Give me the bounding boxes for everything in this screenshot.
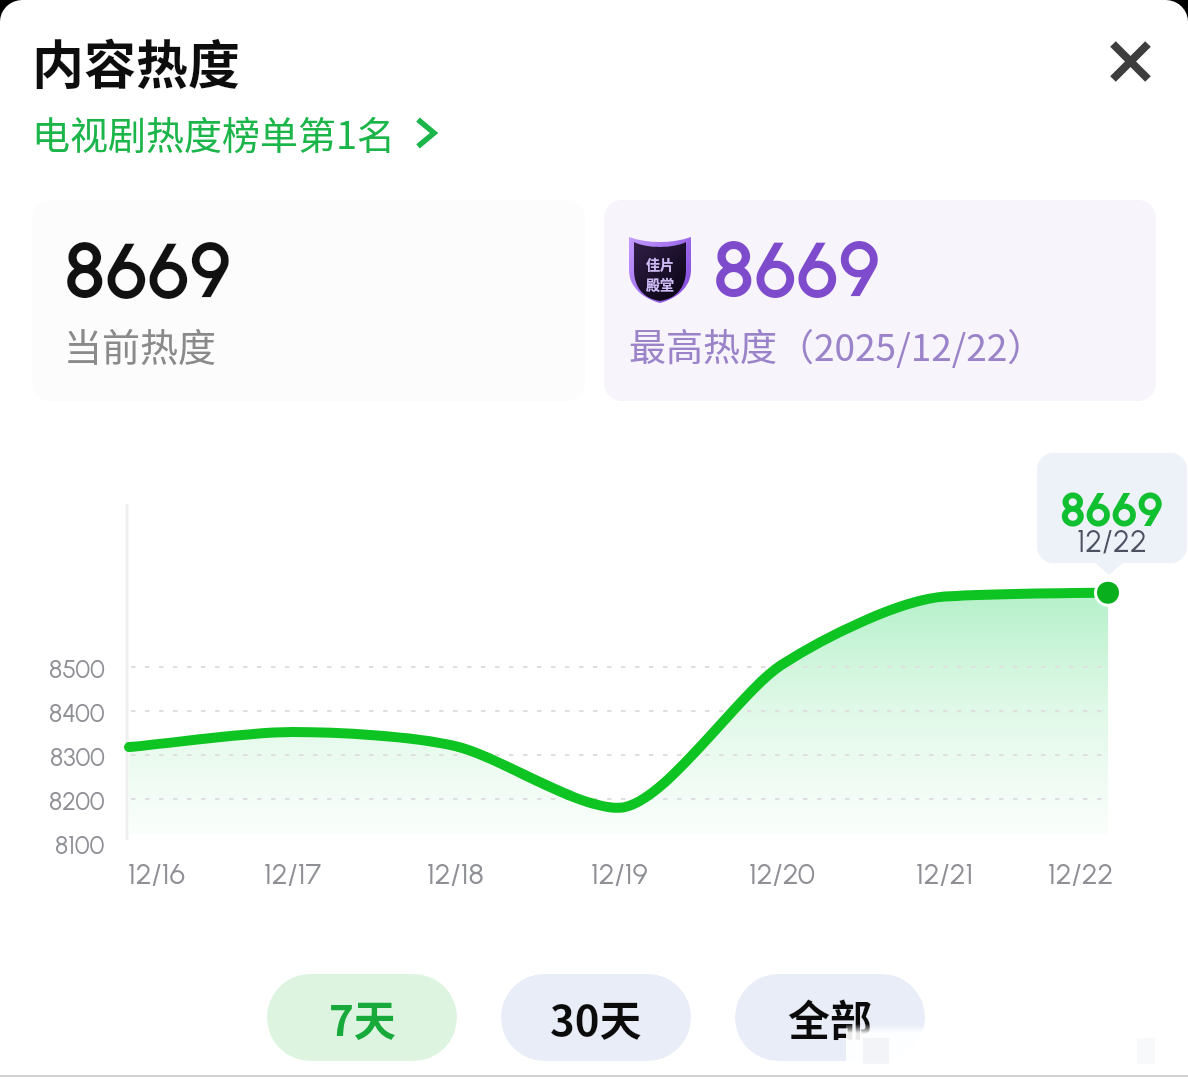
staticText: 12/21 [916, 856, 974, 891]
staticText: 12/22 [1077, 523, 1147, 560]
staticText: 佳片 [646, 254, 674, 274]
staticText: 内容热度 [32, 24, 241, 99]
button[interactable]: 全部 [735, 974, 925, 1061]
button[interactable]: 电视剧热度榜单第1名 [32, 105, 436, 160]
staticText: 殿堂 [646, 274, 674, 294]
staticText: 最高热度（2025/12/22） [629, 318, 1045, 372]
staticText: 8669 [1060, 481, 1164, 537]
staticText: 8669 [713, 224, 881, 316]
staticText: 12/16 [128, 856, 185, 891]
staticText: 7天 [329, 987, 396, 1048]
staticText: 8669 [64, 225, 232, 317]
staticText: 全部 [788, 987, 873, 1048]
button[interactable]: 30天 [501, 974, 691, 1061]
staticText: 电视剧热度榜单第1名 [32, 105, 396, 160]
staticText: 8300 [50, 742, 105, 772]
button[interactable]: Close [1090, 21, 1170, 101]
staticText: 8500 [49, 654, 105, 684]
staticText: 8400 [49, 698, 105, 728]
staticText: 12/20 [749, 856, 816, 891]
button[interactable]: 7天 [267, 974, 457, 1061]
staticText: 12/18 [427, 856, 484, 891]
staticText: 12/17 [264, 856, 321, 891]
staticText: 8200 [49, 786, 105, 816]
button[interactable]: 佳片 [604, 200, 1156, 401]
staticText: 12/19 [591, 856, 648, 891]
button[interactable]: 8669 [32, 200, 585, 401]
staticText: 30天 [550, 987, 642, 1048]
staticText: 12/22 [1048, 856, 1114, 891]
staticText: 当前热度 [64, 317, 217, 372]
staticText: 8100 [55, 830, 105, 860]
